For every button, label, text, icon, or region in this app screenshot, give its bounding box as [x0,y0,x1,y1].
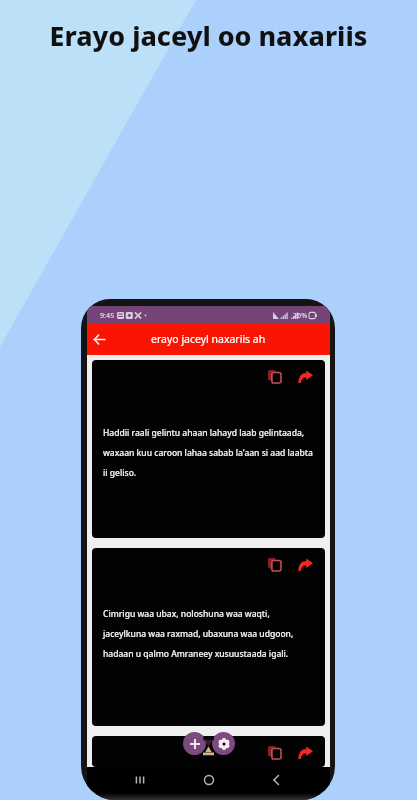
staticText: ii geliso. [103,467,137,487]
staticText: waxaan kuu caroon lahaa sabab la'aan si … [103,447,313,467]
button[interactable]: Add [183,732,206,755]
button[interactable]: Share [298,558,313,571]
staticText: 9:45 [100,310,115,320]
button[interactable]: Share [298,746,313,759]
staticText: erayo jaceyl naxariis ah [151,332,266,346]
button[interactable]: Home [200,771,218,789]
button[interactable]: Recents [131,771,149,789]
button[interactable]: Copy [92,360,325,538]
staticText: jaceylkuna waa raxmad, ubaxuna waa udgoo… [103,628,294,648]
button[interactable]: Copy [92,736,325,767]
button[interactable]: Settings [212,732,235,755]
button[interactable]: Copy [268,370,281,383]
button[interactable]: Copy [268,558,281,571]
staticText: hadaan u qalmo Amraneey xusuustaada igal… [103,648,289,668]
staticText: Haddii raali gelintu ahaan lahayd laab g… [103,427,305,447]
button[interactable]: Copy [92,548,325,726]
staticText: Cimrigu waa ubax, noloshuna waa waqti, [103,608,270,628]
button[interactable]: Copy [268,746,281,759]
button[interactable]: Share [298,370,313,383]
staticText: 26% [293,310,308,320]
button[interactable]: Back [268,771,286,789]
button[interactable]: Back [94,334,105,345]
staticText: Erayo jaceyl oo naxariis [0,17,417,54]
